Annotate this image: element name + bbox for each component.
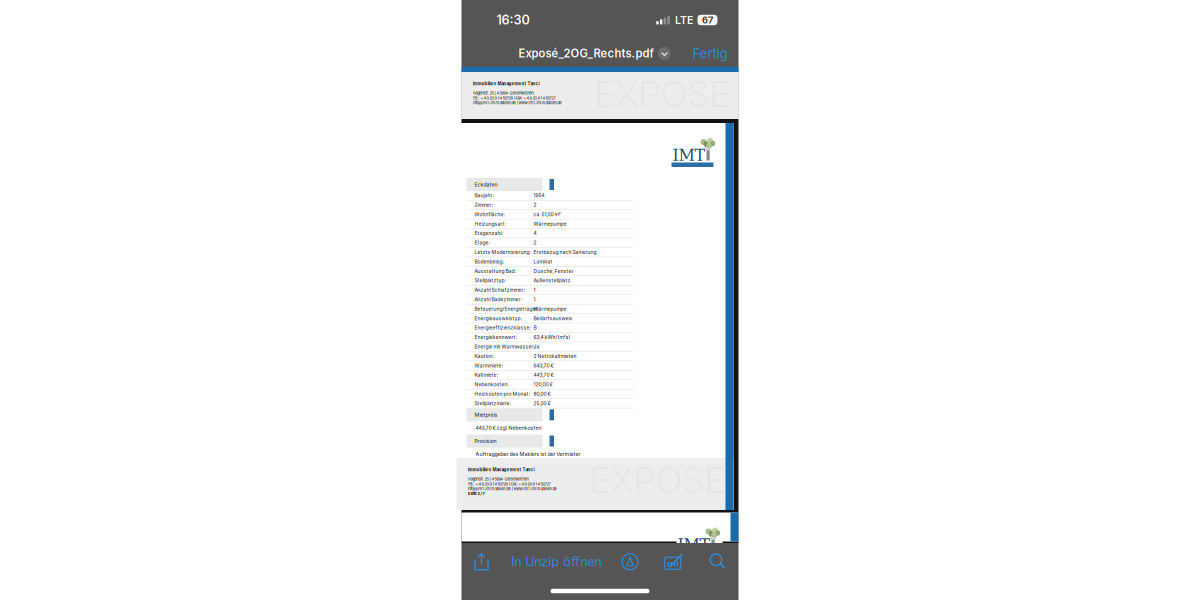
staticText: IMT	[677, 535, 710, 554]
staticText: Dusche, Fenster	[533, 268, 573, 274]
staticText: Wohnfläche:	[474, 211, 504, 217]
staticText: Stellplatztyp:	[474, 277, 505, 283]
staticText: Bedarfsausweis	[533, 315, 572, 321]
staticText: 120,00 €	[533, 381, 552, 387]
staticText: 16:30	[496, 12, 529, 28]
staticText: ca. 51,00 m²	[533, 211, 560, 217]
staticText: info@imt-immobilien.de | www.imt-immobil…	[467, 486, 556, 491]
staticText: 1	[533, 287, 535, 293]
staticText: 443,70 €	[533, 372, 553, 378]
staticText: Bodenbelag:	[474, 259, 503, 265]
staticText: LTE	[675, 13, 693, 26]
staticText: Fertig	[692, 45, 727, 61]
staticText: Immobilien Management Tanci	[467, 467, 534, 472]
button[interactable]: Share	[465, 544, 497, 580]
button[interactable]: Document options	[653, 41, 675, 65]
button[interactable]: Markup	[615, 544, 645, 580]
staticText: Stellplatzmiete:	[474, 400, 510, 406]
staticText: Kaltmiete:	[474, 372, 497, 378]
staticText: Auftraggeber des Maklers ist der Vermiet…	[475, 451, 580, 457]
staticText: Energiekennwert:	[474, 334, 516, 340]
staticText: Hagenstr. 25 | 45894 Gelsenkirchen	[467, 477, 528, 481]
staticText: Tel.: +49 209 1450728 | Fax: +49 209 145…	[472, 95, 555, 100]
staticText: Anzahl Schlafzimmer:	[474, 287, 524, 293]
staticText: IMT	[672, 146, 705, 165]
staticText: Ja	[533, 344, 539, 350]
staticText: Außenstellplatz	[533, 277, 570, 283]
staticText: Ausstattung Bad:	[474, 268, 515, 274]
staticText: Letzte Modernisierung:	[474, 249, 530, 255]
staticText: Energie mit Warmwasser:	[474, 344, 534, 350]
staticText: Erstbezug nach Sanierung	[533, 249, 596, 255]
staticText: Etage:	[474, 240, 489, 246]
staticText: Mietpreis	[474, 412, 497, 418]
staticText: Seite 2/7	[467, 491, 484, 496]
staticText: Heizkosten pro Monat:	[474, 391, 529, 397]
staticText: 80,00 €	[533, 391, 550, 397]
staticText: Wärmepumpe	[533, 221, 566, 227]
staticText: Energieausweistyp:	[474, 315, 521, 321]
staticText: 443,70 € zzgl. Nebenkosten	[475, 425, 541, 431]
button[interactable]: Fertig	[692, 40, 727, 67]
button[interactable]: Search	[702, 544, 732, 580]
staticText: Baujahr:	[474, 192, 493, 198]
staticText: Etagenzahl:	[474, 230, 502, 236]
staticText: 63,4 kWh/(m²a)	[533, 334, 570, 340]
button[interactable]: In Unzip öffnen	[511, 544, 601, 580]
staticText: Exposé_2OG_Rechts.pdf	[518, 47, 653, 60]
staticText: 2	[533, 240, 536, 246]
staticText: 643,70 €	[533, 363, 553, 369]
staticText: 25,00 €	[533, 400, 550, 406]
staticText: In Unzip öffnen	[511, 554, 601, 569]
staticText: Provision	[474, 438, 496, 444]
staticText: Kaution:	[474, 353, 493, 359]
staticText: 1	[533, 296, 535, 302]
staticText: 4	[533, 230, 536, 236]
staticText: 2	[533, 202, 536, 208]
staticText: Wärmepumpe	[533, 306, 566, 312]
staticText: 67	[702, 14, 713, 26]
staticText: Energieeffizienzklasse:	[474, 325, 530, 331]
staticText: Tel.: +49 209 1450728 | Fax: +49 209 145…	[467, 481, 550, 486]
staticText: Immobilien Management Tanci	[472, 81, 539, 86]
staticText: B	[533, 325, 536, 331]
staticText: 2 Nettokaltmieten	[533, 353, 576, 359]
staticText: info@imt-immobilien.de | www.imt-immobil…	[472, 100, 561, 105]
staticText: Hagenstr. 25 | 45894 Gelsenkirchen	[472, 91, 533, 95]
staticText: Warmmiete:	[474, 363, 502, 369]
staticText: 1954	[533, 192, 544, 198]
staticText: Nebenkosten:	[474, 381, 508, 387]
staticText: Zimmer:	[474, 202, 492, 208]
staticText: Anzahl Badezimmer:	[474, 296, 521, 302]
staticText: EXPOSE	[589, 458, 725, 502]
staticText: Befeuerung/Energieträger:	[474, 306, 538, 312]
staticText: Heizungsart:	[474, 221, 505, 227]
staticText: Eckdaten	[474, 181, 497, 188]
staticText: Laminat	[533, 259, 552, 265]
button[interactable]: Annotate	[659, 544, 689, 580]
